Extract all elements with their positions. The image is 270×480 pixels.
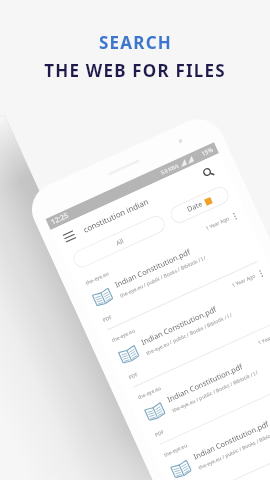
staticText: www... bbox=[224, 375, 245, 390]
button[interactable]: Date bbox=[168, 184, 232, 226]
staticText: the-eye.eu / public / Books / Biblotik /… bbox=[171, 369, 260, 414]
staticText: Indian Constitution.pdf bbox=[113, 246, 192, 290]
staticText: 15% bbox=[200, 146, 214, 158]
staticText: PDF bbox=[154, 428, 166, 439]
staticText: 5.0 KB/s bbox=[160, 162, 180, 177]
button[interactable]: All bbox=[70, 213, 168, 270]
staticText: 1 Year Ago bbox=[205, 215, 231, 232]
staticText: the-eye.eu bbox=[85, 270, 110, 287]
button[interactable]: the-eye.eu bbox=[98, 258, 270, 392]
staticText: Date bbox=[186, 199, 204, 215]
staticText: PDF bbox=[128, 371, 140, 381]
staticText: the-eye.eu / public / Books / Biblotik /… bbox=[145, 312, 233, 357]
staticText: Indian Constitution.pdf bbox=[165, 361, 244, 404]
staticText: Indian Constitution.pdf bbox=[139, 304, 218, 347]
staticText: the-eye.eu bbox=[111, 327, 136, 344]
staticText: Indian Constitution.pdf bbox=[192, 418, 270, 462]
staticText: Indian Constitution.pdf bbox=[218, 476, 270, 480]
staticText: the-eye.eu / public / Books / Biblotik /… bbox=[119, 254, 207, 300]
staticText: constitution indian bbox=[81, 195, 150, 235]
button[interactable]: the-eye.eu bbox=[124, 315, 270, 449]
staticText: 1 Year Ago bbox=[257, 329, 270, 347]
button[interactable]: the-eye.eu bbox=[177, 430, 270, 480]
button[interactable]: the-eye.eu bbox=[72, 200, 267, 334]
staticText: 12:25 bbox=[50, 211, 70, 227]
staticText: PDF bbox=[102, 313, 114, 324]
staticText: All bbox=[114, 236, 125, 248]
staticText: SEARCH bbox=[99, 31, 172, 54]
button[interactable]: Search bbox=[197, 162, 218, 183]
button[interactable]: Menu bbox=[58, 225, 79, 247]
staticText: THE WEB FOR FILES bbox=[44, 59, 226, 82]
button[interactable]: the-eye.eu bbox=[150, 372, 270, 480]
staticText: 1 Year Ago bbox=[231, 272, 257, 289]
staticText: the-eye.eu bbox=[137, 385, 162, 401]
staticText: the-eye.eu bbox=[163, 442, 189, 459]
staticText: the-eye.eu / public / Books / Biblotik /… bbox=[197, 426, 270, 472]
